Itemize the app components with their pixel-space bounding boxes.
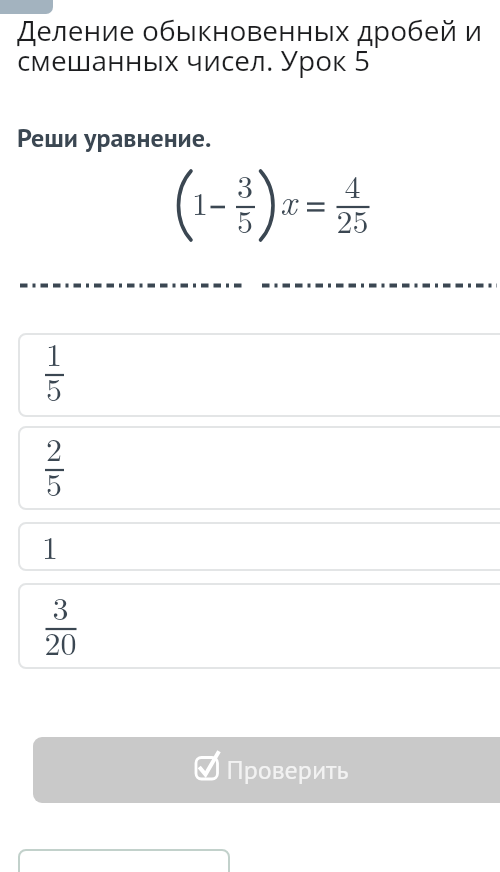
staticText: Реши уравнение.: [17, 121, 212, 155]
button[interactable]: [18, 333, 500, 417]
button[interactable]: [33, 737, 500, 803]
button[interactable]: [18, 426, 500, 510]
button[interactable]: [18, 522, 500, 571]
staticText: Деление обыкновенных дробей и смешанных …: [17, 11, 483, 79]
button[interactable]: [18, 849, 230, 872]
button[interactable]: [18, 583, 500, 669]
